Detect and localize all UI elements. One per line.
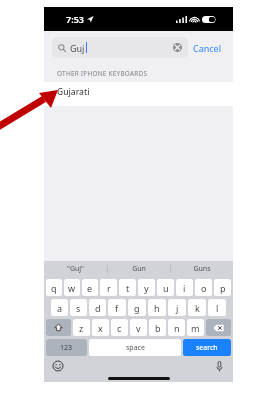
staticText: y — [144, 282, 149, 294]
button[interactable]: n — [168, 319, 185, 336]
staticText: z — [79, 322, 84, 334]
staticText: s — [76, 302, 81, 314]
staticText: g — [134, 302, 140, 314]
staticText: d — [95, 302, 101, 314]
button[interactable]: p — [214, 279, 231, 296]
button[interactable]: u — [157, 279, 174, 296]
button[interactable]: Shift — [46, 319, 71, 336]
button[interactable]: q — [46, 279, 62, 296]
button[interactable]: w — [64, 279, 80, 296]
button[interactable]: c — [111, 319, 128, 336]
button[interactable]: e — [82, 279, 98, 296]
staticText: Guns — [193, 264, 211, 274]
staticText: c — [117, 322, 122, 334]
button[interactable]: Gun — [108, 261, 170, 276]
staticText: n — [174, 322, 180, 334]
button[interactable]: search — [183, 339, 231, 356]
staticText: u — [163, 282, 169, 294]
staticText: a — [57, 302, 63, 314]
button[interactable]: y — [138, 279, 155, 296]
button[interactable]: a — [51, 299, 68, 316]
other: Clear text — [173, 43, 182, 52]
staticText: 7:53 — [66, 13, 84, 25]
staticText: t — [126, 282, 130, 294]
staticText: w — [68, 282, 76, 294]
button[interactable]: v — [130, 319, 147, 336]
button[interactable]: t — [119, 279, 136, 296]
button[interactable]: 123 — [46, 339, 87, 356]
button[interactable]: o — [195, 279, 212, 296]
button[interactable]: z — [73, 319, 90, 336]
button[interactable]: m — [187, 319, 204, 336]
staticText: o — [201, 282, 207, 294]
button[interactable]: Emoji — [53, 361, 63, 371]
staticText: k — [195, 302, 200, 314]
staticText: q — [51, 282, 57, 294]
staticText: b — [155, 322, 161, 334]
button[interactable]: k — [188, 299, 206, 316]
button[interactable]: Backspace — [206, 319, 231, 336]
button[interactable]: Guj — [52, 37, 188, 58]
staticText: i — [183, 282, 186, 294]
staticText: e — [87, 282, 93, 294]
staticText: v — [136, 322, 141, 334]
staticText: h — [154, 302, 160, 314]
staticText: Gun — [132, 264, 146, 274]
button[interactable]: Cancel — [188, 39, 227, 57]
staticText: r — [107, 282, 111, 294]
staticText: Gujarati — [57, 86, 90, 98]
button[interactable]: l — [208, 299, 226, 316]
staticText: m — [191, 322, 200, 334]
button[interactable]: r — [100, 279, 117, 296]
staticText: l — [216, 302, 219, 314]
staticText: Cancel — [193, 42, 222, 54]
staticText: f — [115, 302, 119, 314]
staticText: "Guj" — [67, 264, 84, 274]
staticText: 123 — [60, 343, 73, 353]
button[interactable]: Guns — [171, 261, 233, 276]
button[interactable]: f — [108, 299, 126, 316]
staticText: Guj — [70, 42, 85, 54]
staticText: space — [126, 343, 145, 353]
staticText: j — [176, 302, 179, 314]
staticText: OTHER IPHONE KEYBOARDS — [57, 69, 148, 78]
button[interactable]: d — [89, 299, 106, 316]
button[interactable]: g — [128, 299, 146, 316]
button[interactable]: "Guj" — [44, 261, 107, 276]
button[interactable]: x — [92, 319, 109, 336]
button[interactable]: s — [70, 299, 87, 316]
button[interactable]: Gujarati — [44, 82, 233, 102]
button[interactable]: h — [148, 299, 166, 316]
staticText: search — [196, 343, 218, 353]
staticText: p — [220, 282, 226, 294]
button[interactable]: b — [149, 319, 166, 336]
button[interactable]: space — [89, 339, 181, 356]
button[interactable]: Dictation — [216, 361, 223, 372]
staticText: x — [98, 322, 103, 334]
button[interactable]: i — [176, 279, 193, 296]
button[interactable]: j — [168, 299, 186, 316]
